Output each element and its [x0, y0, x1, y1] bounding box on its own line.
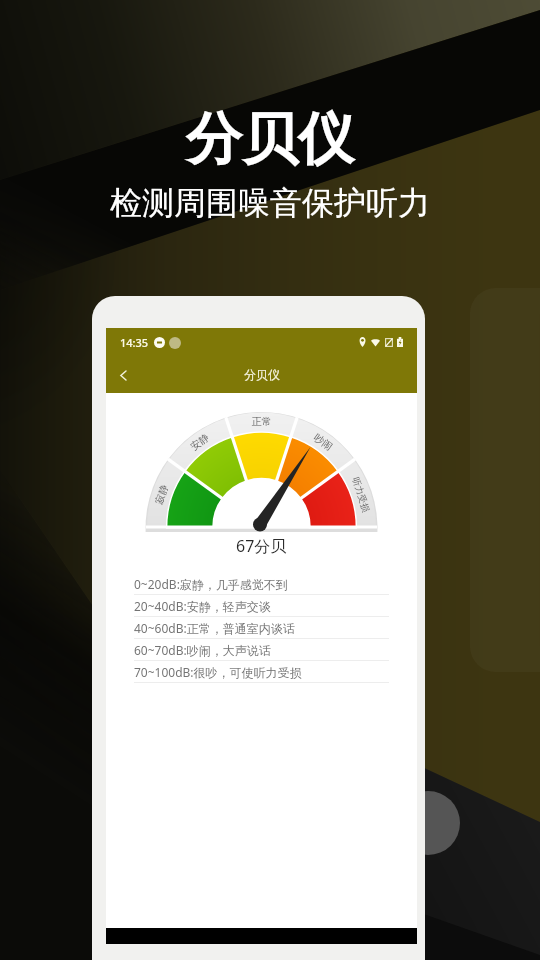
button[interactable]: 70~100dB:很吵，可使听力受损	[134, 661, 389, 682]
staticText: 20~40dB:安静，轻声交谈	[134, 598, 271, 614]
staticText: 分贝仪	[244, 367, 280, 382]
staticText: 0~20dB:寂静，几乎感觉不到	[134, 576, 288, 592]
button[interactable]: 0~20dB:寂静，几乎感觉不到	[134, 573, 389, 594]
staticText: 60~70dB:吵闹，大声说话	[134, 642, 271, 658]
staticText: 检测周围噪音保护听力	[110, 183, 430, 223]
staticText: 14:35	[120, 335, 149, 350]
button[interactable]: 60~70dB:吵闹，大声说话	[134, 639, 389, 660]
button[interactable]: Back	[106, 356, 417, 393]
staticText: 分贝仪	[186, 104, 354, 175]
button[interactable]: Back	[109, 361, 137, 389]
staticText: 67分贝	[236, 535, 287, 557]
staticText: 70~100dB:很吵，可使听力受损	[134, 664, 302, 680]
button[interactable]: 20~40dB:安静，轻声交谈	[134, 595, 389, 616]
staticText: 40~60dB:正常，普通室内谈话	[134, 620, 295, 636]
button[interactable]: 40~60dB:正常，普通室内谈话	[134, 617, 389, 638]
